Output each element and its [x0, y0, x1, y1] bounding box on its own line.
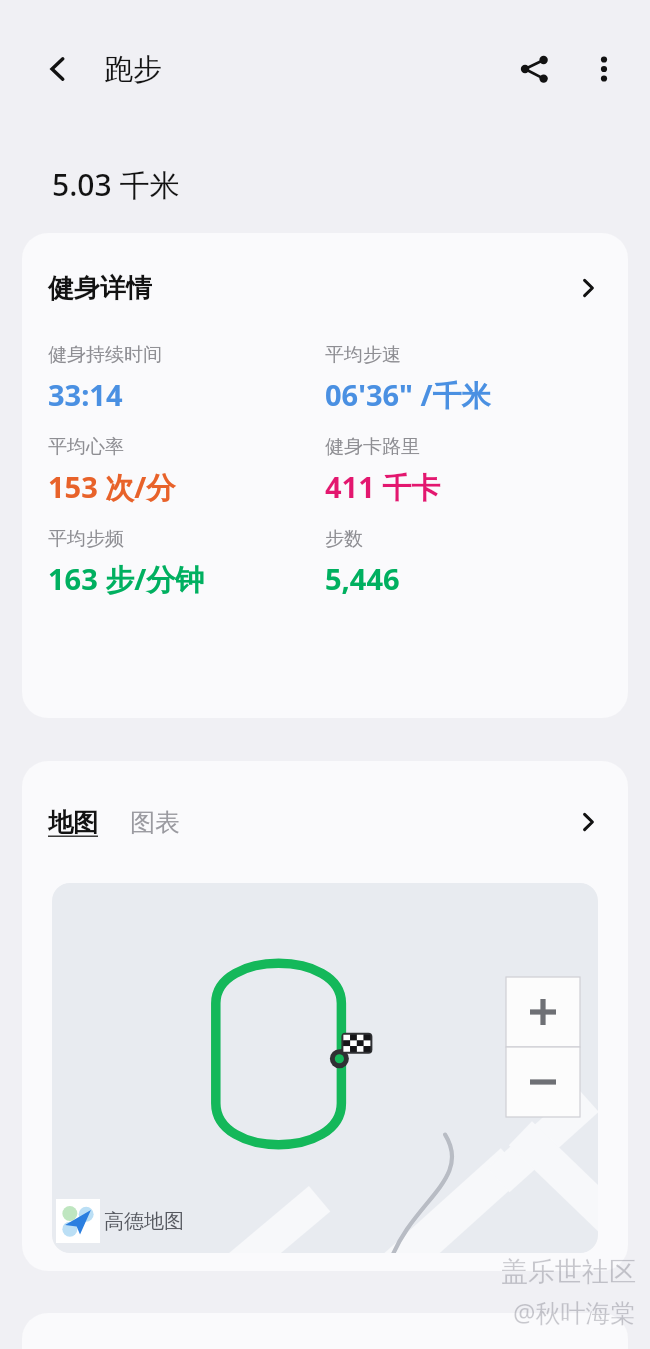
staticText: 平均心率	[48, 435, 124, 459]
staticText: 5,446	[325, 559, 400, 598]
button[interactable]: 地图	[48, 807, 98, 838]
button[interactable]: Zoom in	[506, 977, 580, 1047]
button[interactable]	[22, 1313, 628, 1349]
staticText: 153 次/分	[48, 467, 176, 507]
button[interactable]: Route map	[52, 883, 598, 1253]
staticText: 图表	[130, 807, 180, 838]
staticText: 5.03 千米	[52, 164, 180, 205]
staticText: 高德地图	[104, 1209, 184, 1234]
staticText: 健身持续时间	[48, 343, 162, 367]
staticText: 411 千卡	[325, 467, 441, 507]
button[interactable]: Share	[506, 41, 562, 97]
button[interactable]: 图表	[130, 807, 180, 838]
staticText: 步数	[325, 527, 363, 551]
staticText: 健身卡路里	[325, 435, 420, 459]
staticText: 163 步/分钟	[48, 559, 205, 599]
staticText: 地图	[48, 807, 98, 838]
button[interactable]: Zoom out	[506, 1047, 580, 1117]
staticText: 平均步速	[325, 343, 401, 367]
button[interactable]: More options	[576, 41, 632, 97]
staticText: 平均步频	[48, 527, 124, 551]
button[interactable]: Back	[30, 41, 86, 97]
staticText: 健身详情	[48, 272, 152, 305]
staticText: @秋叶海棠	[513, 1295, 636, 1329]
staticText: 06'36" /千米	[325, 375, 491, 415]
button[interactable]: Expand map	[578, 812, 598, 832]
staticText: 盖乐世社区	[501, 1255, 636, 1289]
staticText: 33:14	[48, 375, 123, 414]
staticText: 跑步	[104, 51, 162, 88]
button[interactable]: 健身详情	[22, 233, 628, 343]
